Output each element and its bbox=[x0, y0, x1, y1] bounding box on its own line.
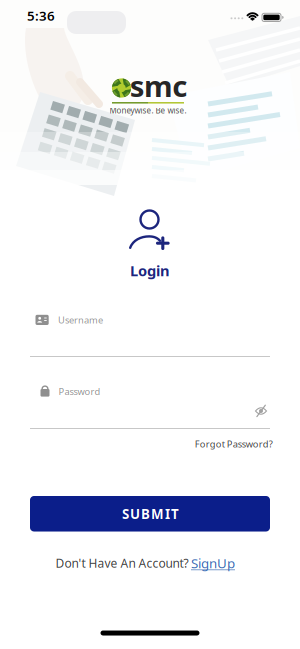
button[interactable]: SignUp bbox=[191, 554, 235, 572]
staticText: SignUp bbox=[191, 554, 235, 572]
staticText: Don't Have An Account? bbox=[55, 555, 188, 571]
staticText: Moneywise. Be wise. bbox=[109, 105, 186, 116]
staticText: Login bbox=[130, 261, 170, 280]
button[interactable]: Forgot Password? bbox=[195, 438, 273, 450]
staticText: 5:36 bbox=[27, 7, 55, 24]
button[interactable]: Password bbox=[30, 375, 270, 429]
staticText: S U B M I T bbox=[122, 505, 179, 523]
button[interactable]: Username bbox=[30, 301, 270, 357]
staticText: Password bbox=[58, 385, 100, 398]
staticText: Forgot Password? bbox=[195, 438, 273, 450]
staticText: smc bbox=[130, 66, 187, 105]
button[interactable]: Show password bbox=[252, 403, 270, 419]
button[interactable]: S U B M I T bbox=[30, 496, 270, 531]
staticText: Username bbox=[58, 314, 103, 326]
